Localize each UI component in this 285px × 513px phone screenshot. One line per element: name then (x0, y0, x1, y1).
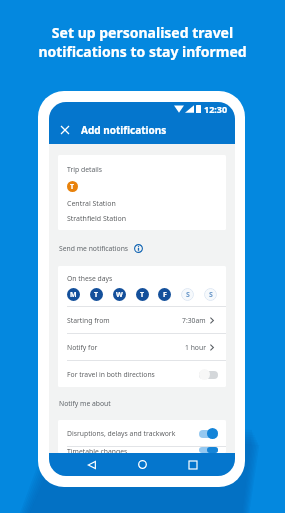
staticText: T (70, 182, 75, 192)
staticText: S (186, 290, 190, 300)
staticText: Strathfield Station (67, 214, 127, 224)
button[interactable]: Timetable changes (58, 447, 226, 453)
staticText: Send me notifications (59, 244, 129, 253)
button[interactable]: T (90, 288, 103, 301)
button[interactable]: For travel in both directions (58, 361, 226, 387)
button[interactable]: Home (134, 456, 151, 473)
button[interactable]: Back (83, 456, 100, 473)
button[interactable]: Close (56, 121, 73, 138)
staticText: 12:30 (204, 103, 228, 115)
staticText: T (140, 290, 145, 300)
staticText: 1 hour (185, 343, 206, 352)
button[interactable]: S (181, 288, 194, 301)
button[interactable]: Notify for (58, 334, 226, 360)
staticText: M (70, 290, 77, 300)
staticText: For travel in both directions (67, 370, 155, 379)
staticText: Set up personalised travel notifications… (38, 23, 247, 61)
staticText: Notify for (67, 343, 98, 352)
button[interactable]: Disruptions, delays and trackwork (58, 420, 226, 446)
staticText: Notify me about (59, 399, 111, 408)
staticText: Trip details (67, 165, 102, 174)
staticText: Timetable changes (67, 447, 128, 453)
staticText: Starting from (67, 316, 110, 325)
staticText: S (209, 290, 213, 300)
staticText: T (94, 290, 99, 300)
button[interactable]: Starting from (58, 307, 226, 333)
staticText: Central Station (67, 199, 116, 209)
staticText: Disruptions, delays and trackwork (67, 429, 176, 438)
button[interactable]: T (136, 288, 149, 301)
staticText: 7:30am (182, 316, 206, 325)
staticText: F (163, 290, 167, 300)
button[interactable]: M (67, 288, 80, 301)
staticText: On these days (67, 274, 113, 283)
staticText: W (116, 290, 123, 300)
button[interactable]: S (204, 288, 217, 301)
button[interactable]: F (158, 288, 171, 301)
staticText: Add notifications (81, 123, 167, 137)
button[interactable]: W (113, 288, 126, 301)
button[interactable]: More information (134, 244, 143, 253)
button[interactable]: Recent apps (184, 456, 201, 473)
